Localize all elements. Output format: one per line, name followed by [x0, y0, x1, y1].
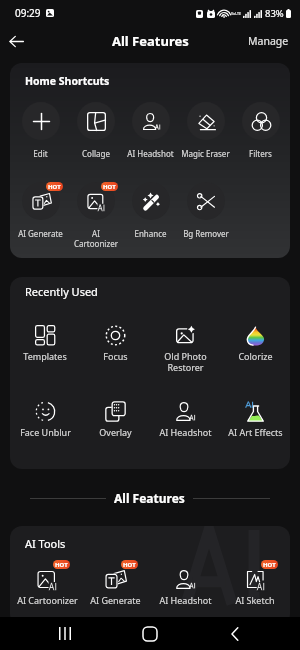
button[interactable]: Edit [13, 102, 68, 159]
button[interactable]: Enhance [123, 182, 178, 239]
staticText: AI Headshot [159, 426, 212, 438]
staticText: AI Cartoonizer [74, 228, 118, 249]
button[interactable]: Collage [68, 102, 123, 159]
staticText: 83% [265, 7, 284, 20]
staticText: Magic Eraser [181, 148, 230, 159]
staticText: Colorize [238, 350, 273, 362]
staticText: HOT [55, 561, 68, 569]
button[interactable]: Back [3, 28, 29, 54]
staticText: AI Headshot [127, 148, 174, 159]
button[interactable]: Focus [80, 323, 150, 362]
staticText: Enhance [134, 228, 167, 239]
staticText: HOT [123, 561, 136, 569]
staticText: HOT [103, 183, 116, 191]
staticText: All Features [112, 32, 189, 50]
staticText: All Features [114, 490, 185, 506]
button[interactable]: HOT [12, 567, 82, 606]
staticText: Manage [248, 34, 289, 48]
button[interactable]: Overlay [80, 399, 150, 438]
staticText: AI Tools [25, 536, 66, 551]
staticText: AI Generate [18, 228, 63, 239]
button[interactable]: AI Headshot [150, 567, 220, 606]
staticText: Filters [249, 148, 272, 159]
staticText: Overlay [99, 426, 132, 438]
button[interactable]: Face Unblur [10, 399, 80, 438]
button[interactable]: Magic Eraser [178, 102, 233, 159]
button[interactable]: HOT [13, 182, 68, 239]
staticText: Templates [23, 350, 67, 362]
staticText: 09:29 [15, 6, 41, 20]
button[interactable]: AI Art Effects [220, 399, 290, 438]
staticText: AI Art Effects [228, 426, 283, 438]
staticText: AI Generate [90, 594, 141, 606]
button[interactable]: Old Photo Restorer [150, 323, 220, 373]
staticText: HOT [263, 561, 276, 569]
staticText: AI Cartoonizer [17, 594, 78, 606]
button[interactable]: Colorize [220, 323, 290, 362]
staticText: Recently Used [25, 284, 98, 299]
button[interactable]: Templates [10, 323, 80, 362]
staticText: AI Headshot [159, 594, 212, 606]
button[interactable]: Home [130, 617, 170, 650]
button[interactable]: HOT [220, 567, 290, 606]
button[interactable]: Recent apps [45, 617, 85, 650]
button[interactable]: Manage [237, 28, 300, 54]
button[interactable]: Back [215, 617, 255, 650]
staticText: Edit [33, 148, 48, 159]
button[interactable]: HOT [80, 567, 150, 606]
staticText: AI Sketch [235, 594, 275, 606]
staticText: Old Photo Restorer [164, 350, 207, 373]
staticText: Collage [82, 148, 110, 159]
staticText: Face Unblur [20, 426, 71, 438]
staticText: HOT [48, 183, 61, 191]
staticText: VoLTE [231, 11, 242, 16]
button[interactable]: Filters [233, 102, 288, 159]
button[interactable]: AI Headshot [123, 102, 178, 159]
button[interactable]: HOT [68, 182, 123, 249]
button[interactable]: AI Headshot [150, 399, 220, 438]
staticText: Bg Remover [183, 228, 229, 239]
staticText: Home Shortcuts [25, 74, 110, 88]
button[interactable]: Bg Remover [178, 182, 233, 239]
staticText: Focus [103, 350, 128, 362]
